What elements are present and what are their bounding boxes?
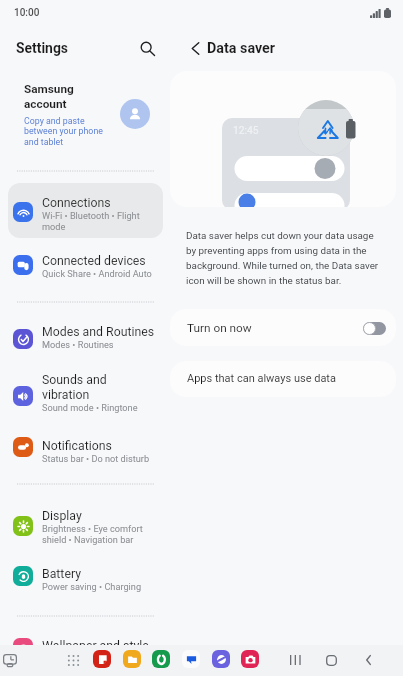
staticText: Turn on now bbox=[187, 321, 252, 335]
staticText: Settings bbox=[16, 40, 68, 56]
staticText: Samsung account bbox=[24, 82, 74, 111]
button[interactable] bbox=[8, 560, 163, 601]
button[interactable]: Camera bbox=[241, 650, 259, 668]
staticText: 10:00 bbox=[14, 7, 40, 19]
staticText: Modes and Routines bbox=[42, 325, 155, 339]
staticText: Data saver helps cut down your data usag… bbox=[186, 230, 383, 286]
button[interactable]: Apps that can always use data bbox=[170, 361, 396, 397]
staticText: Apps that can always use data bbox=[187, 372, 336, 385]
button[interactable]: All apps bbox=[64, 651, 82, 669]
button[interactable] bbox=[8, 632, 163, 673]
button[interactable]: Notes bbox=[93, 650, 111, 668]
staticText: Wallpapers • Color palette bbox=[42, 653, 148, 664]
staticText: Quick Share • Android Auto bbox=[42, 268, 152, 279]
staticText: Connections bbox=[42, 196, 111, 210]
staticText: Modes • Routines bbox=[42, 339, 114, 350]
staticText: Wi-Fi • Bluetooth • Flight mode bbox=[42, 210, 140, 232]
button[interactable]: Screen capture bbox=[1, 651, 19, 669]
staticText: Status bar • Do not disturb bbox=[42, 453, 150, 464]
button[interactable] bbox=[8, 247, 163, 288]
button[interactable]: Back bbox=[181, 34, 209, 62]
button[interactable] bbox=[8, 432, 163, 473]
staticText: Sound mode • Ringtone bbox=[42, 402, 138, 413]
button[interactable]: Home bbox=[321, 650, 341, 670]
button[interactable]: Turn on now bbox=[170, 309, 396, 346]
button[interactable]: My Files bbox=[123, 650, 141, 668]
button[interactable] bbox=[8, 366, 163, 421]
button[interactable] bbox=[8, 183, 163, 238]
button[interactable]: Messages bbox=[182, 650, 200, 668]
button[interactable]: Search bbox=[133, 34, 161, 62]
button[interactable] bbox=[8, 318, 163, 359]
button[interactable]: Contacts bbox=[152, 650, 170, 668]
button[interactable]: Samsung account bbox=[14, 78, 162, 158]
staticText: Copy and paste between your phone and ta… bbox=[24, 116, 103, 148]
button[interactable]: Recent apps bbox=[285, 650, 305, 670]
staticText: Wallpaper and style bbox=[42, 639, 149, 653]
staticText: Sounds and vibration bbox=[42, 373, 107, 402]
staticText: Display bbox=[42, 509, 82, 523]
staticText: 12:45 bbox=[233, 125, 259, 137]
staticText: Battery bbox=[42, 567, 82, 581]
staticText: Connected devices bbox=[42, 254, 146, 268]
button[interactable] bbox=[8, 502, 163, 557]
staticText: Data saver bbox=[207, 40, 276, 57]
staticText: Brightness • Eye comfort shield • Naviga… bbox=[42, 523, 143, 545]
button[interactable]: Internet bbox=[212, 650, 230, 668]
staticText: Notifications bbox=[42, 439, 112, 453]
button[interactable]: Data saver toggle bbox=[363, 322, 386, 335]
button[interactable]: Back bbox=[358, 650, 378, 670]
staticText: Power saving • Charging bbox=[42, 581, 142, 592]
